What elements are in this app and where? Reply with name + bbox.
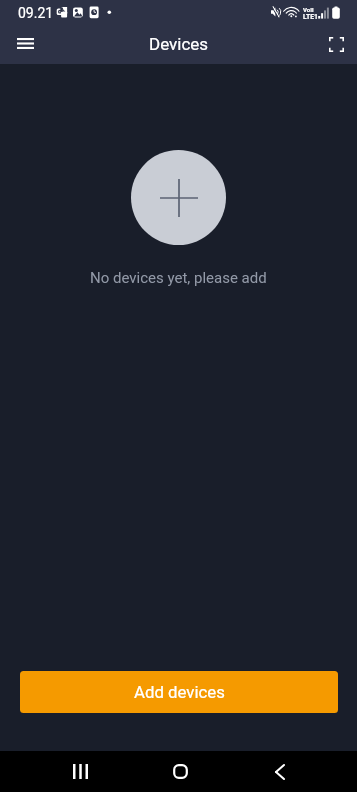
button[interactable]: Scan QR code	[320, 29, 352, 61]
staticText: Add devices	[134, 682, 225, 702]
button[interactable]: Add devices	[20, 671, 338, 713]
button[interactable]: Back	[255, 751, 305, 792]
button[interactable]: Add device	[131, 150, 226, 245]
staticText: No devices yet, please add	[90, 269, 267, 287]
staticText: 09.21	[18, 5, 54, 21]
staticText: Devices	[149, 34, 209, 54]
button[interactable]: Recent apps	[55, 751, 105, 792]
button[interactable]: Menu	[9, 29, 41, 61]
staticText: LTE1	[303, 13, 318, 21]
staticText: VoⅡ	[303, 6, 314, 13]
button[interactable]: Home	[155, 751, 205, 792]
